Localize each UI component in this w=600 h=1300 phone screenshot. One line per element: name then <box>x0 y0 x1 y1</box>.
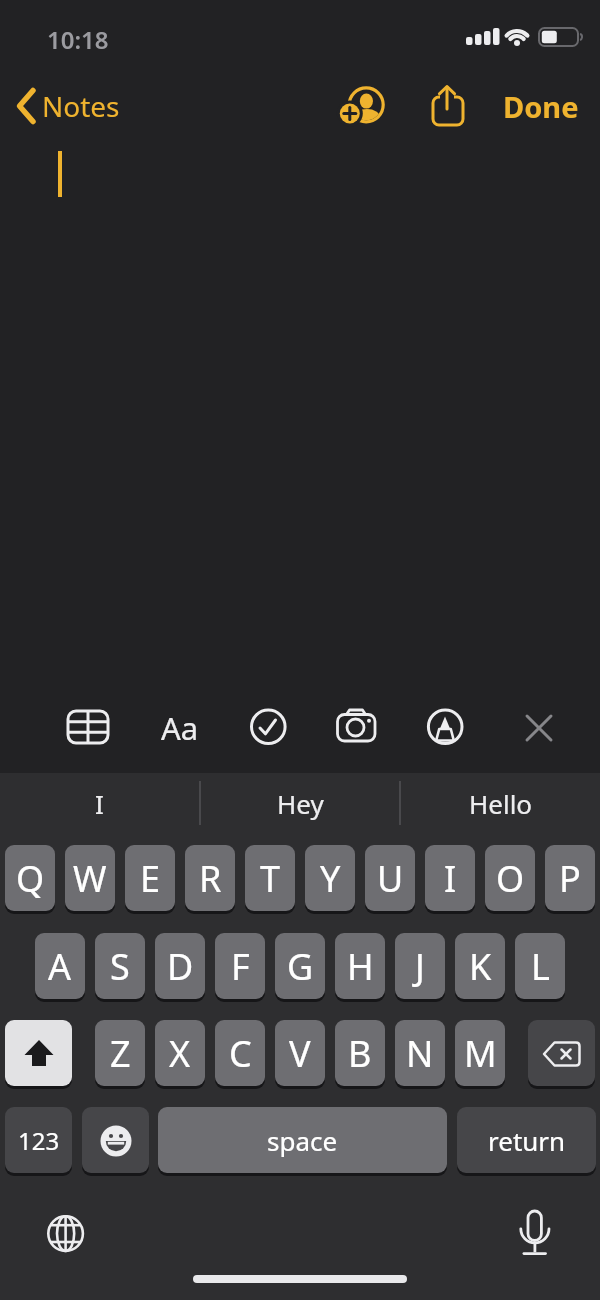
button[interactable]: Hello <box>401 781 600 825</box>
button[interactable]: 123 <box>5 1107 72 1174</box>
staticText: return <box>488 1123 566 1158</box>
button[interactable]: G <box>275 933 325 1000</box>
button[interactable] <box>524 713 554 743</box>
staticText: I <box>444 854 457 903</box>
button[interactable]: U <box>365 845 415 912</box>
button[interactable] <box>334 704 380 748</box>
staticText: Hello <box>469 786 533 821</box>
staticText: U <box>377 854 404 903</box>
button[interactable] <box>5 1020 72 1087</box>
button[interactable]: S <box>95 933 145 1000</box>
staticText: T <box>260 854 281 903</box>
button[interactable]: T <box>245 845 295 912</box>
button[interactable] <box>424 74 468 130</box>
button[interactable] <box>338 78 394 134</box>
button[interactable]: I <box>0 781 199 825</box>
staticText: F <box>231 942 250 991</box>
staticText: space <box>267 1123 338 1158</box>
button[interactable]: I <box>425 845 475 912</box>
staticText: W <box>73 854 107 903</box>
staticText: C <box>229 1029 252 1078</box>
staticText: G <box>287 942 314 991</box>
button[interactable]: D <box>155 933 205 1000</box>
button[interactable]: F <box>215 933 265 1000</box>
button[interactable]: K <box>455 933 505 1000</box>
button[interactable]: H <box>335 933 385 1000</box>
button[interactable] <box>518 1203 552 1259</box>
button[interactable]: A <box>35 933 85 1000</box>
button[interactable]: Hey <box>201 781 399 825</box>
staticText: K <box>469 942 492 991</box>
button[interactable]: M <box>455 1020 505 1087</box>
staticText: R <box>199 854 222 903</box>
button[interactable] <box>528 1020 595 1087</box>
button[interactable]: Notes <box>10 84 120 128</box>
staticText: S <box>110 942 130 991</box>
button[interactable]: P <box>545 845 595 912</box>
button[interactable] <box>425 707 465 747</box>
button[interactable]: O <box>485 845 535 912</box>
staticText: N <box>406 1029 434 1078</box>
staticText: Y <box>320 854 341 903</box>
staticText: Done <box>503 87 579 126</box>
button[interactable] <box>249 708 289 748</box>
staticText: J <box>415 942 425 991</box>
button[interactable] <box>82 1107 149 1174</box>
staticText: O <box>496 854 525 903</box>
button[interactable]: C <box>215 1020 265 1087</box>
staticText: L <box>531 942 550 991</box>
button[interactable]: L <box>515 933 565 1000</box>
staticText: V <box>289 1029 311 1078</box>
staticText: D <box>167 942 194 991</box>
button[interactable]: Y <box>305 845 355 912</box>
button[interactable]: Aa <box>155 706 205 750</box>
button[interactable]: W <box>65 845 115 912</box>
staticText: Hey <box>277 786 324 821</box>
staticText: M <box>464 1029 497 1078</box>
button[interactable]: Q <box>5 845 55 912</box>
button[interactable]: V <box>275 1020 325 1087</box>
staticText: B <box>348 1029 372 1078</box>
button[interactable]: return <box>457 1107 596 1174</box>
button[interactable] <box>46 1214 86 1254</box>
staticText: 10:18 <box>47 23 109 56</box>
staticText: A <box>48 942 72 991</box>
staticText: Q <box>16 854 45 903</box>
staticText: I <box>95 786 104 821</box>
staticText: 123 <box>18 1124 60 1157</box>
staticText: Aa <box>161 707 199 749</box>
staticText: E <box>140 854 161 903</box>
staticText: P <box>559 854 581 903</box>
button[interactable]: X <box>155 1020 205 1087</box>
staticText: Z <box>110 1029 131 1078</box>
staticText: H <box>347 942 374 991</box>
button[interactable]: Done <box>496 84 586 128</box>
button[interactable]: N <box>395 1020 445 1087</box>
staticText: Notes <box>42 87 120 125</box>
button[interactable]: Z <box>95 1020 145 1087</box>
button[interactable] <box>66 709 110 745</box>
button[interactable]: space <box>158 1107 447 1174</box>
button[interactable]: R <box>185 845 235 912</box>
button[interactable]: B <box>335 1020 385 1087</box>
button[interactable]: J <box>395 933 445 1000</box>
staticText: X <box>169 1029 191 1078</box>
button[interactable]: E <box>125 845 175 912</box>
